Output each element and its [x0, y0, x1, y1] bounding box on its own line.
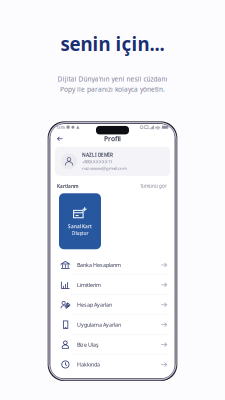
staticText: Sanal Kart	[68, 223, 92, 230]
staticText: NAZLI DEMİR	[82, 152, 113, 158]
staticText: naz.xxxxxx@gmail.com	[82, 165, 127, 171]
button[interactable]: Tümünü gör	[140, 183, 167, 189]
staticText: +905XXXXXX11	[82, 159, 112, 164]
staticText: Banka Hesaplarım	[77, 261, 121, 269]
button[interactable]: Limitlerim	[49, 275, 176, 295]
staticText: Tümünü gör	[140, 183, 167, 189]
button[interactable]: Hesap Ayarları	[49, 295, 176, 314]
staticText: Popy ile paranızı kolayca yönetin.	[60, 85, 165, 94]
button[interactable]: Bize Ulaş	[49, 335, 176, 354]
staticText: Limitlerim	[77, 281, 101, 288]
staticText: Dijital Dünya'nın yeni nesil cüzdanı	[57, 74, 167, 83]
button[interactable]: Banka Hesaplarım	[49, 255, 176, 275]
staticText: Hakkında	[77, 361, 100, 368]
staticText: Hesap Ayarları	[77, 301, 112, 308]
button[interactable]: Uygulama Ayarları	[49, 315, 176, 334]
staticText: Oluştur	[71, 230, 88, 236]
staticText: 13:05	[56, 124, 65, 130]
staticText: Uygulama Ayarları	[77, 321, 121, 328]
button[interactable]: Sanal Kart	[59, 193, 101, 249]
staticText: Kartlarım	[57, 183, 78, 189]
staticText: senin için...	[60, 31, 164, 56]
staticText: Profil	[104, 134, 121, 143]
staticText: Bize Ulaş	[77, 341, 99, 348]
button[interactable]: NAZLI DEMİR	[55, 147, 170, 176]
button[interactable]: Hakkında	[49, 355, 176, 374]
button[interactable]: Geri	[55, 134, 65, 144]
